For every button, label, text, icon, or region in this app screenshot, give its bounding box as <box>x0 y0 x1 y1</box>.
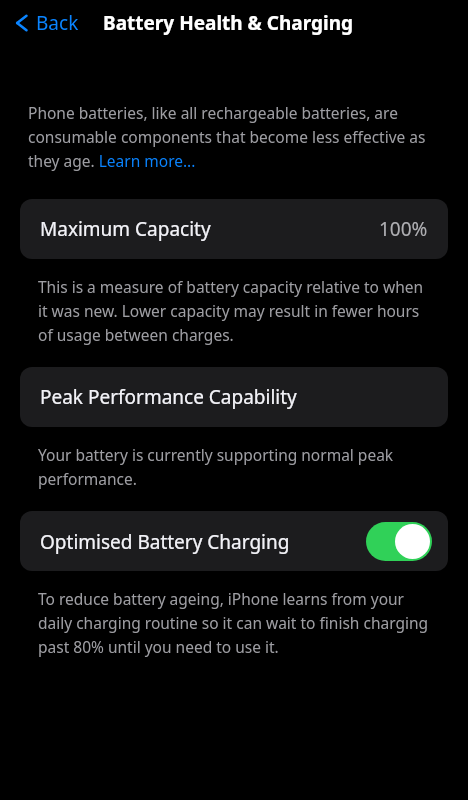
button[interactable]: Back <box>10 6 83 40</box>
staticText: Phone batteries, like all rechargeable b… <box>28 102 440 171</box>
staticText: Your battery is currently supporting nor… <box>38 444 430 489</box>
button[interactable]: Optimised Battery Charging <box>20 511 448 571</box>
button[interactable]: Peak Performance Capability <box>20 367 448 427</box>
button[interactable]: Optimised Battery Charging toggle <box>366 522 432 561</box>
staticText: 100% <box>379 216 428 242</box>
staticText: Maximum Capacity <box>40 216 379 242</box>
button[interactable]: Maximum Capacity <box>20 199 448 259</box>
staticText: This is a measure of battery capacity re… <box>38 276 430 345</box>
staticText: Back <box>36 10 79 36</box>
staticText: Battery Health & Charging <box>103 10 354 36</box>
staticText: To reduce battery ageing, iPhone learns … <box>38 588 430 657</box>
staticText: Peak Performance Capability <box>40 384 297 410</box>
staticText: Optimised Battery Charging <box>40 529 366 555</box>
